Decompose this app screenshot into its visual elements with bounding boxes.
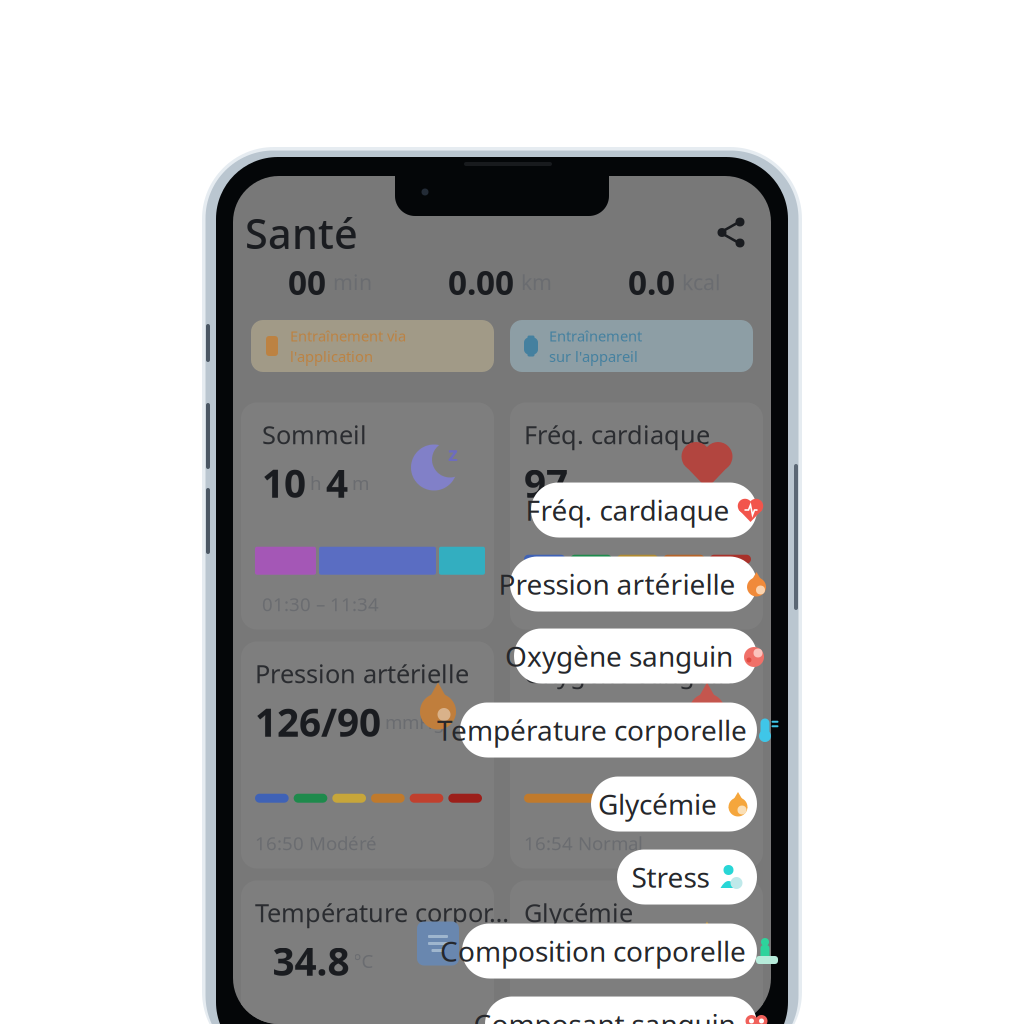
button[interactable]: Entraînement via xyxy=(251,320,494,372)
button[interactable]: Oxygène sanguin xyxy=(514,628,757,683)
staticText: l'application xyxy=(290,346,373,366)
staticText: Entraînement xyxy=(549,326,642,345)
button[interactable]: Glycémie xyxy=(591,776,757,831)
staticText: Pression artérielle xyxy=(255,656,469,690)
button[interactable]: Composition corporelle xyxy=(462,923,757,978)
staticText: 00 xyxy=(288,260,326,304)
staticText: Oxygène sanguin xyxy=(505,637,733,675)
staticText: z xyxy=(448,440,458,467)
staticText: Glycémie xyxy=(524,895,633,929)
staticText: Oxygène sanguin xyxy=(524,656,734,690)
staticText: 4 xyxy=(326,457,348,508)
staticText: 97 xyxy=(524,457,568,508)
staticText: Santé xyxy=(245,206,358,260)
staticText: Stress xyxy=(631,858,709,896)
button[interactable]: Température corporelle xyxy=(460,702,757,757)
staticText: Température corporelle xyxy=(437,711,747,749)
button[interactable]: Composant sanguin xyxy=(485,996,757,1024)
staticText: 0.0 xyxy=(628,260,675,304)
staticText: 0.00 xyxy=(448,260,514,304)
staticText: km xyxy=(521,268,552,296)
staticText: Sommeil xyxy=(262,417,367,451)
staticText: Fréq. cardiaque xyxy=(524,417,710,451)
staticText: m xyxy=(352,470,369,495)
staticText: kcal xyxy=(682,268,721,296)
staticText: Fréq. cardiaque xyxy=(525,491,729,529)
staticText: 34.8 xyxy=(272,935,349,986)
staticText: 16:54 Normal xyxy=(524,592,643,616)
staticText: Composant sanguin xyxy=(473,1005,735,1024)
staticText: 16:54 Normal xyxy=(524,831,643,855)
staticText: Température corpor… xyxy=(255,895,509,929)
staticText: Pression artérielle xyxy=(498,565,735,603)
staticText: 01:30 – 11:34 xyxy=(262,592,379,616)
button[interactable]: Pression artérielle xyxy=(510,556,757,611)
staticText: 10 xyxy=(262,457,306,508)
button[interactable]: Partager xyxy=(713,215,749,251)
staticText: Entraînement via xyxy=(290,326,406,345)
button[interactable]: Fréq. cardiaque xyxy=(531,482,757,537)
staticText: 16:50 Modéré xyxy=(255,831,377,855)
button[interactable]: Stress xyxy=(617,849,757,904)
staticText: % xyxy=(572,709,588,734)
staticText: 5.6 xyxy=(524,935,579,986)
staticText: sur l'appareil xyxy=(549,346,638,366)
staticText: h xyxy=(310,470,322,495)
staticText: °C xyxy=(353,948,373,973)
staticText: min xyxy=(333,268,372,296)
staticText: mmol/L xyxy=(583,948,650,973)
staticText: Glycémie xyxy=(598,785,717,823)
button[interactable]: Entraînement xyxy=(510,320,753,372)
staticText: 98 xyxy=(524,696,568,747)
staticText: 126/90 xyxy=(255,696,381,747)
staticText: mmHg xyxy=(385,709,444,734)
staticText: Composition corporelle xyxy=(440,932,746,970)
